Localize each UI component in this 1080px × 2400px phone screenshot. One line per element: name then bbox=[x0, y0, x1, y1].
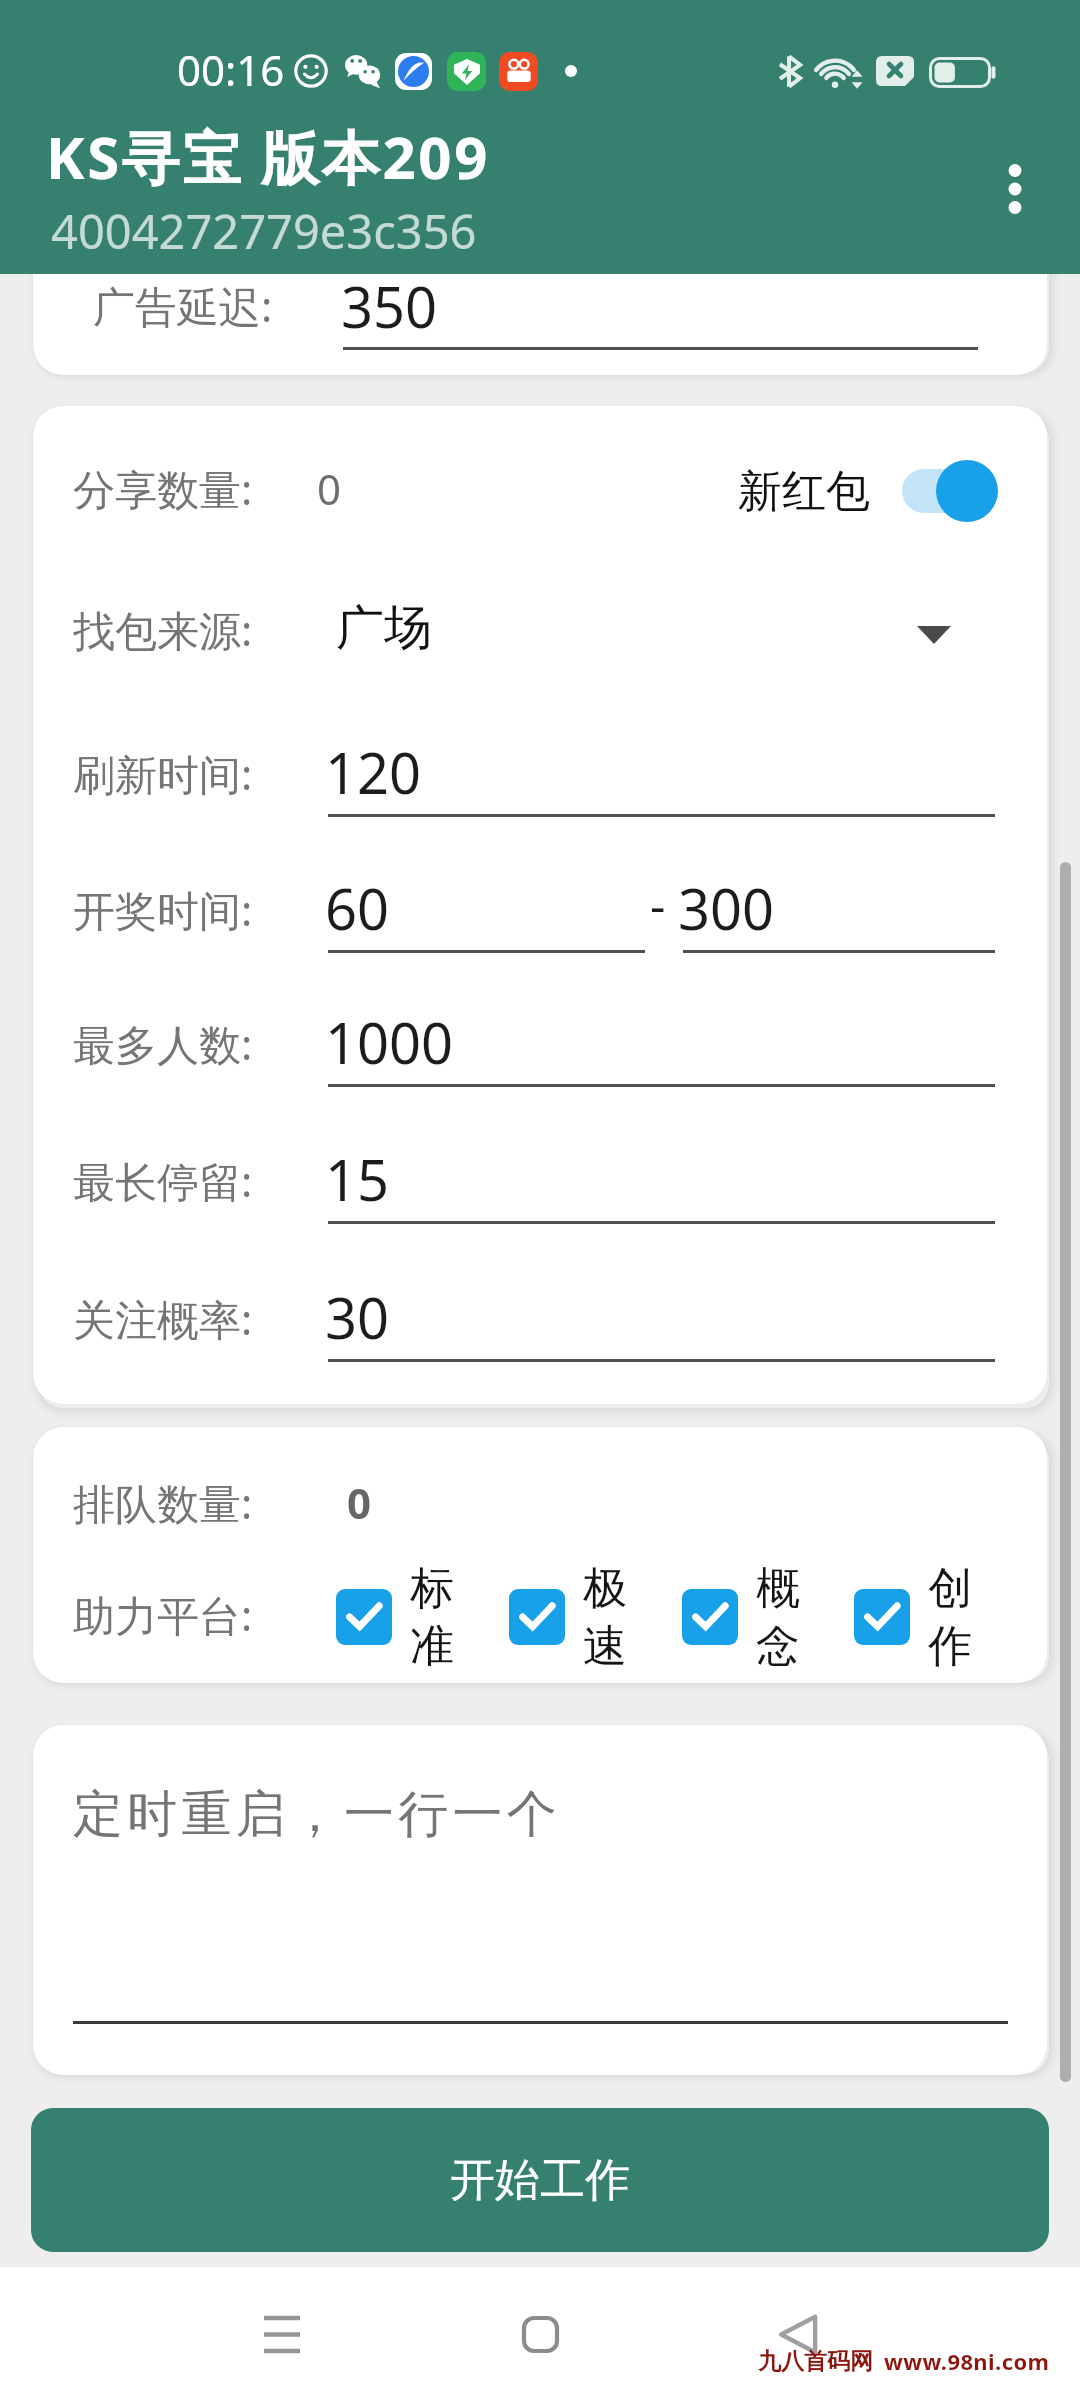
staticText: 创 作 bbox=[928, 1561, 972, 1674]
staticText: 九八首码网 bbox=[758, 2347, 873, 2376]
staticText: 15 bbox=[325, 1141, 390, 1217]
staticText: KS寻宝 版本209 bbox=[46, 117, 491, 196]
button[interactable]: 创 作 bbox=[854, 1559, 972, 1675]
button[interactable] bbox=[325, 728, 996, 824]
button[interactable] bbox=[678, 864, 996, 960]
staticText: 找包来源: bbox=[73, 601, 253, 658]
button[interactable]: Recent apps bbox=[227, 2279, 337, 2389]
staticText: 广场 bbox=[336, 598, 432, 658]
button[interactable]: 开始工作 bbox=[31, 2108, 1049, 2252]
staticText: 最长停留: bbox=[73, 1152, 253, 1209]
button[interactable] bbox=[73, 1765, 1008, 2029]
button[interactable]: Home bbox=[485, 2279, 595, 2389]
staticText: - bbox=[650, 872, 666, 937]
staticText: 分享数量: bbox=[73, 460, 253, 517]
button[interactable]: 标 准 bbox=[336, 1559, 454, 1675]
staticText: 0 bbox=[347, 1474, 372, 1531]
button[interactable]: 极 速 bbox=[509, 1559, 627, 1675]
button[interactable]: 概 念 bbox=[682, 1559, 800, 1675]
staticText: 0 bbox=[317, 460, 342, 517]
staticText: 概 念 bbox=[756, 1561, 800, 1674]
staticText: 定时重启，一行一个 bbox=[73, 1783, 561, 1846]
staticText: 4004272779e3c356 bbox=[51, 199, 477, 263]
button[interactable] bbox=[325, 1273, 996, 1369]
staticText: 刷新时间: bbox=[73, 745, 253, 802]
button[interactable]: Back bbox=[743, 2279, 853, 2389]
staticText: 300 bbox=[678, 870, 775, 946]
button[interactable] bbox=[33, 580, 1047, 684]
staticText: 开奖时间: bbox=[73, 881, 253, 938]
button[interactable] bbox=[325, 998, 996, 1094]
button[interactable] bbox=[341, 212, 981, 360]
button[interactable] bbox=[325, 1135, 996, 1231]
staticText: 标 准 bbox=[410, 1561, 454, 1674]
staticText: 1000 bbox=[325, 1004, 454, 1080]
button[interactable]: 新红包 bbox=[738, 455, 998, 527]
staticText: 60 bbox=[325, 870, 390, 946]
staticText: www.98ni.com bbox=[884, 2346, 1050, 2376]
button[interactable] bbox=[325, 864, 646, 960]
staticText: 新红包 bbox=[738, 464, 870, 519]
staticText: 广告延迟: bbox=[93, 277, 273, 334]
staticText: 助力平台: bbox=[73, 1586, 253, 1643]
staticText: 00:16 bbox=[177, 41, 285, 98]
staticText: 350 bbox=[341, 268, 438, 344]
staticText: 排队数量: bbox=[73, 1474, 253, 1531]
staticText: 最多人数: bbox=[73, 1015, 253, 1072]
staticText: 120 bbox=[325, 734, 422, 810]
staticText: 开始工作 bbox=[450, 2152, 630, 2209]
staticText: 极 速 bbox=[583, 1561, 627, 1674]
staticText: 30 bbox=[325, 1279, 390, 1355]
button[interactable]: More options bbox=[978, 152, 1052, 226]
staticText: 关注概率: bbox=[73, 1290, 253, 1347]
